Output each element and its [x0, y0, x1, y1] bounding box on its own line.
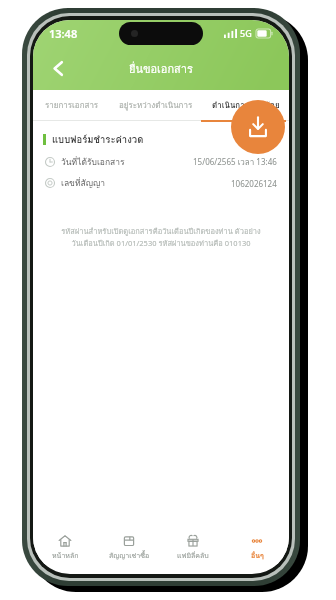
staticText: รหัสผ่านสำหรับเปิดดูเอกสารคือวันเดือนปีเ…	[59, 225, 263, 250]
staticText: แบบฟอร์มชำระค่างวด	[52, 132, 144, 147]
staticText: รายการเอกสาร	[45, 99, 99, 112]
button[interactable]: เลขที่สัญญา	[33, 175, 289, 191]
staticText: ยื่นขอเอกสาร	[129, 60, 193, 77]
staticText: อื่นๆ	[251, 550, 264, 561]
staticText: 13:48	[49, 26, 78, 41]
staticText: หน้าหลัก	[52, 550, 79, 561]
button[interactable]: สัญญาเช่าซื้อ	[97, 527, 161, 567]
staticText: 5G	[240, 27, 252, 39]
button[interactable]: แฟมิลี่คลับ	[161, 527, 225, 567]
button[interactable]: อื่นๆ	[225, 527, 289, 567]
button[interactable]: ดำเนินการเรียบร้อย	[202, 90, 289, 120]
button[interactable]: อยู่ระหว่างดำเนินการ	[110, 90, 202, 120]
staticText: เลขที่สัญญา	[61, 176, 105, 190]
button[interactable]: หน้าหลัก	[33, 527, 97, 567]
staticText: วันที่ได้รับเอกสาร	[61, 155, 125, 169]
staticText: 15/06/2565 เวลา 13:46	[193, 156, 277, 169]
button[interactable]: วันที่ได้รับเอกสาร	[33, 154, 289, 170]
button[interactable]: Download	[231, 100, 285, 154]
staticText: 1062026124	[231, 178, 277, 189]
button[interactable]: Back	[39, 49, 77, 87]
button[interactable]: รายการเอกสาร	[33, 90, 110, 120]
staticText: สัญญาเช่าซื้อ	[109, 550, 150, 561]
staticText: แฟมิลี่คลับ	[177, 550, 209, 561]
staticText: อยู่ระหว่างดำเนินการ	[119, 99, 193, 112]
staticText: ดำเนินการเรียบร้อย	[212, 99, 280, 112]
